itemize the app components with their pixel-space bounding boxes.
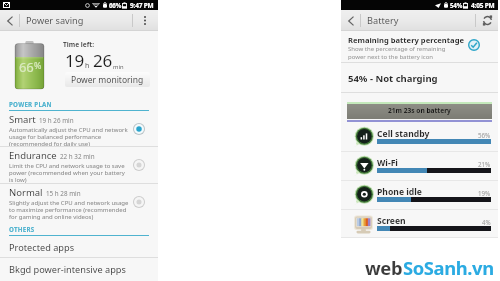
staticText: %: [34, 59, 42, 71]
button[interactable]: Screen: [341, 210, 498, 238]
button[interactable]: Power monitoring: [65, 72, 150, 87]
staticText: 66%: [109, 1, 122, 9]
staticText: 15 h 28 min: [46, 189, 81, 198]
staticText: 21m 23s on battery: [388, 106, 451, 115]
staticText: Phone idle: [377, 186, 422, 198]
button[interactable]: Cell standby: [341, 123, 498, 152]
staticText: web: [365, 255, 403, 280]
staticText: Battery: [367, 14, 399, 27]
staticText: Automatically adjust the CPU and network…: [9, 126, 130, 148]
button[interactable]: Normal: [0, 184, 158, 221]
button[interactable]: Wi-Fi: [341, 152, 498, 181]
staticText: 22 h 32 min: [60, 152, 95, 161]
button[interactable]: 54% - Not charging: [341, 63, 498, 93]
staticText: Remaining battery percentage: [348, 35, 464, 45]
button[interactable]: Refresh: [476, 10, 498, 31]
staticText: Power monitoring: [71, 74, 144, 86]
button[interactable]: Smart: [0, 111, 158, 147]
staticText: Time left:: [63, 40, 95, 49]
staticText: Show the percentage of remaining power n…: [348, 45, 464, 60]
staticText: OTHERS: [9, 225, 35, 233]
staticText: 4:05 PM: [471, 1, 495, 10]
staticText: 56%: [478, 131, 491, 139]
staticText: Bkgd power-intensive apps: [9, 263, 126, 276]
staticText: 26: [93, 49, 113, 72]
button[interactable]: Bkgd power-intensive apps: [0, 258, 158, 280]
staticText: Protected apps: [9, 241, 75, 254]
staticText: POWER PLAN: [9, 100, 52, 108]
staticText: 19%: [478, 189, 491, 197]
staticText: 19 h 26 min: [39, 116, 74, 125]
staticText: Normal: [9, 186, 43, 199]
staticText: 19: [65, 49, 85, 72]
button[interactable]: Back: [341, 10, 360, 31]
staticText: Cell standby: [377, 128, 430, 140]
staticText: min: [113, 63, 124, 71]
button[interactable]: More options: [132, 10, 158, 31]
button[interactable]: Endurance: [0, 147, 158, 184]
button[interactable]: Phone idle: [341, 181, 498, 210]
staticText: 54% - Not charging: [348, 72, 438, 85]
staticText: Wi-Fi: [377, 157, 398, 169]
staticText: Screen: [377, 215, 406, 227]
staticText: Smart: [9, 113, 36, 126]
staticText: Slightly adjust the CPU and network usag…: [9, 199, 130, 221]
staticText: 66: [19, 58, 34, 76]
staticText: 21%: [478, 160, 491, 168]
staticText: 9:47 PM: [130, 1, 154, 10]
staticText: h: [85, 61, 90, 71]
button[interactable]: Remaining battery percentage: [341, 31, 498, 63]
staticText: Endurance: [9, 149, 57, 162]
staticText: 54%: [450, 1, 463, 9]
staticText: Limit the CPU and network usage to save …: [9, 162, 130, 184]
staticText: 4%: [482, 218, 491, 226]
staticText: SoSanh.vn: [403, 255, 494, 280]
staticText: Power saving: [26, 14, 84, 27]
button[interactable]: Protected apps: [0, 236, 158, 258]
button[interactable]: Back: [0, 10, 19, 31]
